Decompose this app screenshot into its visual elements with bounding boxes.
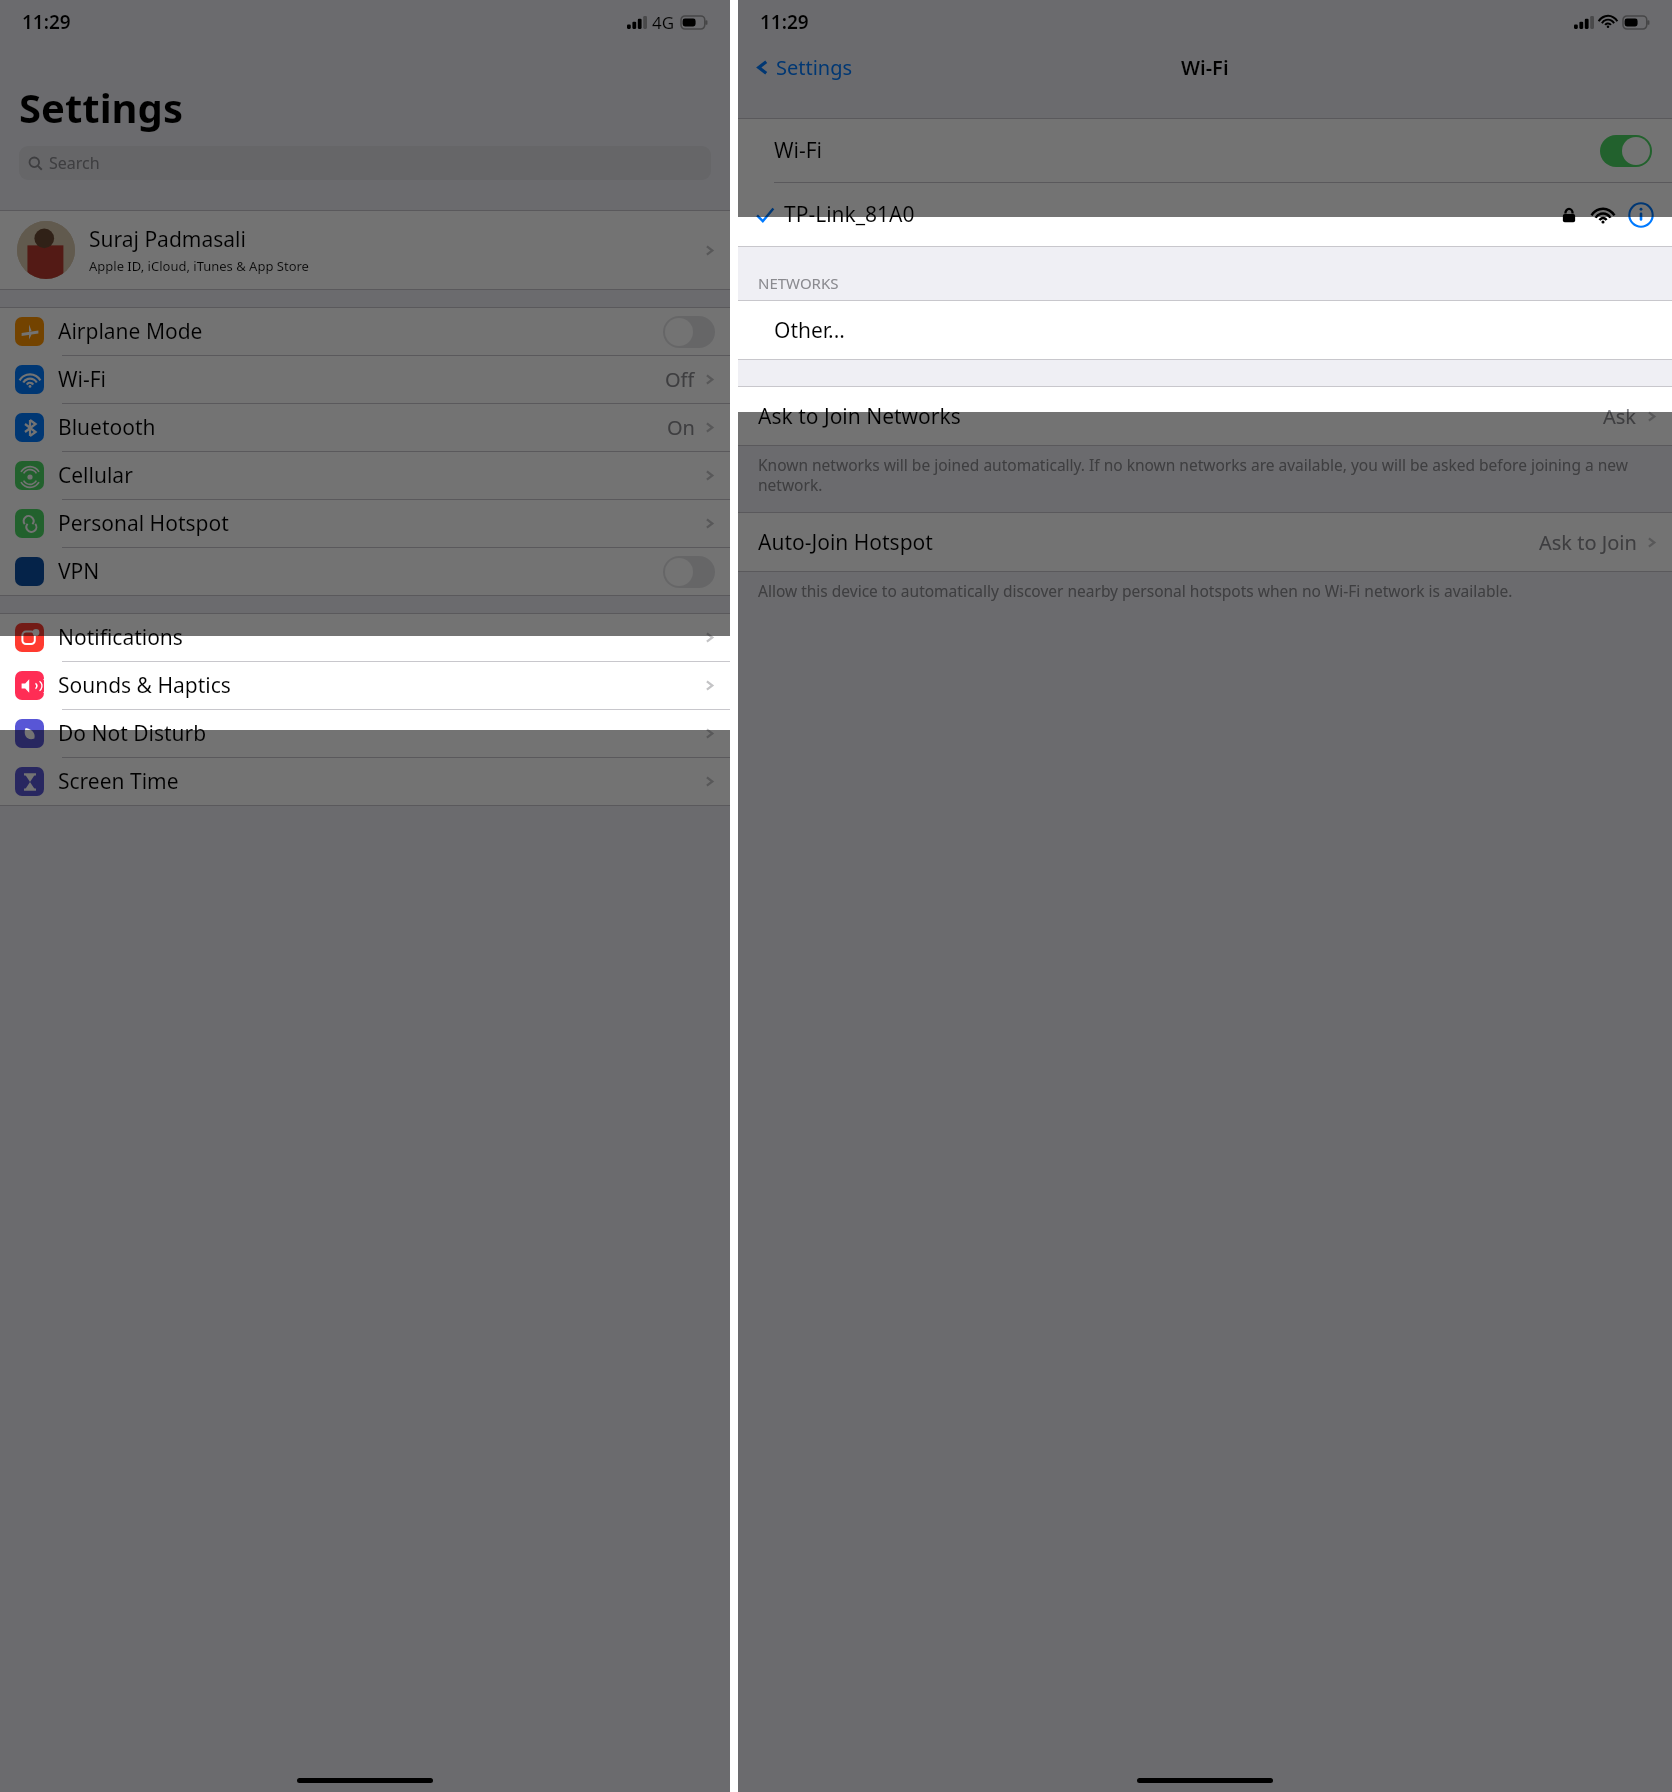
button[interactable]: Sounds & Haptics	[0, 662, 730, 709]
button[interactable]: Notifications	[0, 614, 730, 661]
staticText: VPN	[58, 557, 100, 586]
staticText: Bluetooth	[58, 413, 156, 442]
staticText: Wi-Fi	[58, 365, 107, 394]
staticText: Wi-Fi	[1181, 54, 1229, 81]
button[interactable]: Search	[19, 146, 711, 180]
button[interactable]: Settings	[750, 48, 857, 87]
staticText: Sounds & Haptics	[58, 671, 231, 700]
staticText: 11:29	[22, 9, 71, 35]
button[interactable]: Network info	[1628, 202, 1654, 228]
staticText: Screen Time	[58, 767, 179, 796]
staticText: Settings	[19, 80, 183, 134]
staticText: Apple ID, iCloud, iTunes & App Store	[89, 257, 309, 275]
staticText: 4G	[652, 11, 675, 34]
staticText: Cellular	[58, 461, 133, 490]
button[interactable]: Do Not Disturb	[0, 710, 730, 757]
staticText: Auto-Join Hotspot	[758, 528, 933, 557]
staticText: Suraj Padmasali	[89, 225, 246, 254]
button[interactable]: Bluetooth	[0, 404, 730, 451]
staticText: Other...	[774, 316, 846, 345]
staticText: 11:29	[760, 9, 809, 35]
staticText: Settings	[776, 54, 853, 81]
staticText: On	[667, 414, 695, 441]
button[interactable]: Screen Time	[0, 758, 730, 805]
staticText: Ask to Join	[1539, 529, 1637, 556]
button[interactable]: VPN	[0, 548, 730, 595]
button[interactable]: Other...	[738, 301, 1672, 359]
staticText: Do Not Disturb	[58, 719, 207, 748]
staticText: Personal Hotspot	[58, 509, 229, 538]
button[interactable]: TP-Link_81A0	[738, 183, 1672, 246]
staticText: Allow this device to automatically disco…	[758, 580, 1513, 601]
button[interactable]: Wi-Fi	[738, 119, 1672, 182]
staticText: Known networks will be joined automatica…	[758, 454, 1652, 496]
button[interactable]: Off	[663, 316, 715, 348]
staticText: Ask to Join Networks	[758, 402, 961, 431]
button[interactable]: Personal Hotspot	[0, 500, 730, 547]
staticText: Ask	[1603, 403, 1637, 430]
button[interactable]: Cellular	[0, 452, 730, 499]
staticText: Off	[665, 366, 695, 393]
staticText: Airplane Mode	[58, 317, 203, 346]
staticText: TP-Link_81A0	[784, 200, 915, 229]
staticText: Notifications	[58, 623, 183, 652]
button[interactable]: Off	[663, 556, 715, 588]
button[interactable]: On	[1600, 135, 1652, 167]
staticText: Wi-Fi	[774, 136, 823, 165]
button[interactable]: Wi-Fi	[0, 356, 730, 403]
button[interactable]: Auto-Join Hotspot	[738, 513, 1672, 571]
staticText: Search	[49, 152, 100, 174]
button[interactable]: Suraj Padmasali	[0, 211, 730, 289]
button[interactable]: Ask to Join Networks	[738, 387, 1672, 445]
staticText: NETWORKS	[758, 273, 839, 293]
button[interactable]: Airplane Mode	[0, 308, 730, 355]
